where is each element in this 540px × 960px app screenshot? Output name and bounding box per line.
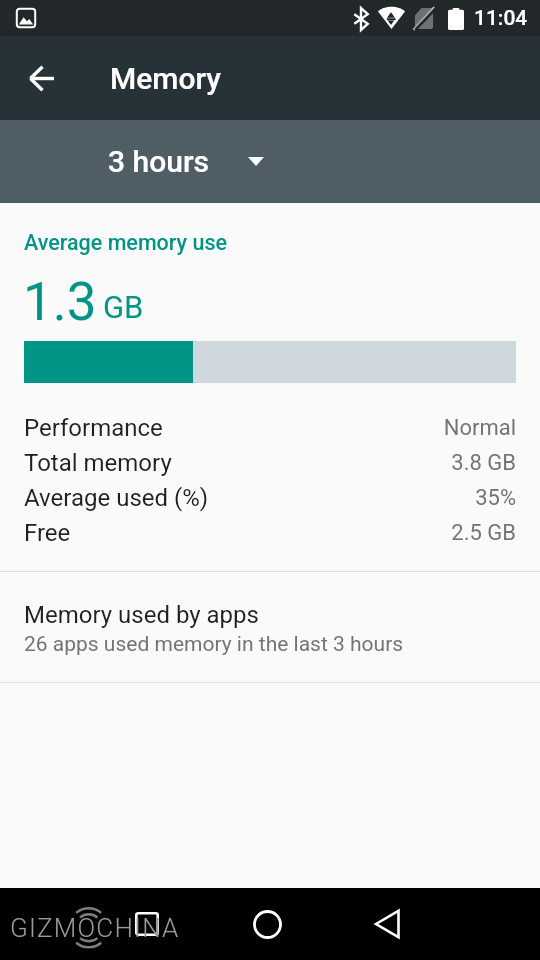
staticText: GB <box>103 289 144 325</box>
button[interactable]: 3 hours <box>84 130 288 193</box>
staticText: 11:04 <box>474 6 528 31</box>
staticText: Memory used by apps <box>24 601 259 629</box>
button[interactable]: Home <box>231 888 303 960</box>
staticText: Memory <box>110 61 222 96</box>
button[interactable]: Memory used by apps <box>0 572 540 682</box>
staticText: Performance <box>24 414 163 442</box>
button[interactable]: Average used (%) <box>0 480 540 515</box>
staticText: 35% <box>475 485 516 511</box>
staticText: Normal <box>443 415 516 441</box>
button[interactable]: Average memory use <box>24 230 228 255</box>
staticText: 3 hours <box>108 144 209 179</box>
button[interactable]: Free <box>0 515 540 550</box>
staticText: Total memory <box>24 449 172 477</box>
button[interactable]: Navigate up <box>0 36 84 120</box>
button[interactable]: Recent apps <box>111 888 183 960</box>
staticText: Average used (%) <box>24 484 209 512</box>
staticText: 2.5 GB <box>451 520 516 546</box>
staticText: 26 apps used memory in the last 3 hours <box>24 632 404 657</box>
other: Screenshot <box>16 8 36 28</box>
button[interactable]: Performance <box>0 410 540 445</box>
staticText: Free <box>24 519 71 547</box>
staticText: 1.3 <box>23 271 97 333</box>
staticText: 3.8 GB <box>451 450 516 476</box>
button[interactable]: Total memory <box>0 445 540 480</box>
staticText: GIZMOCHINA <box>10 913 180 943</box>
button[interactable]: Back <box>351 888 423 960</box>
